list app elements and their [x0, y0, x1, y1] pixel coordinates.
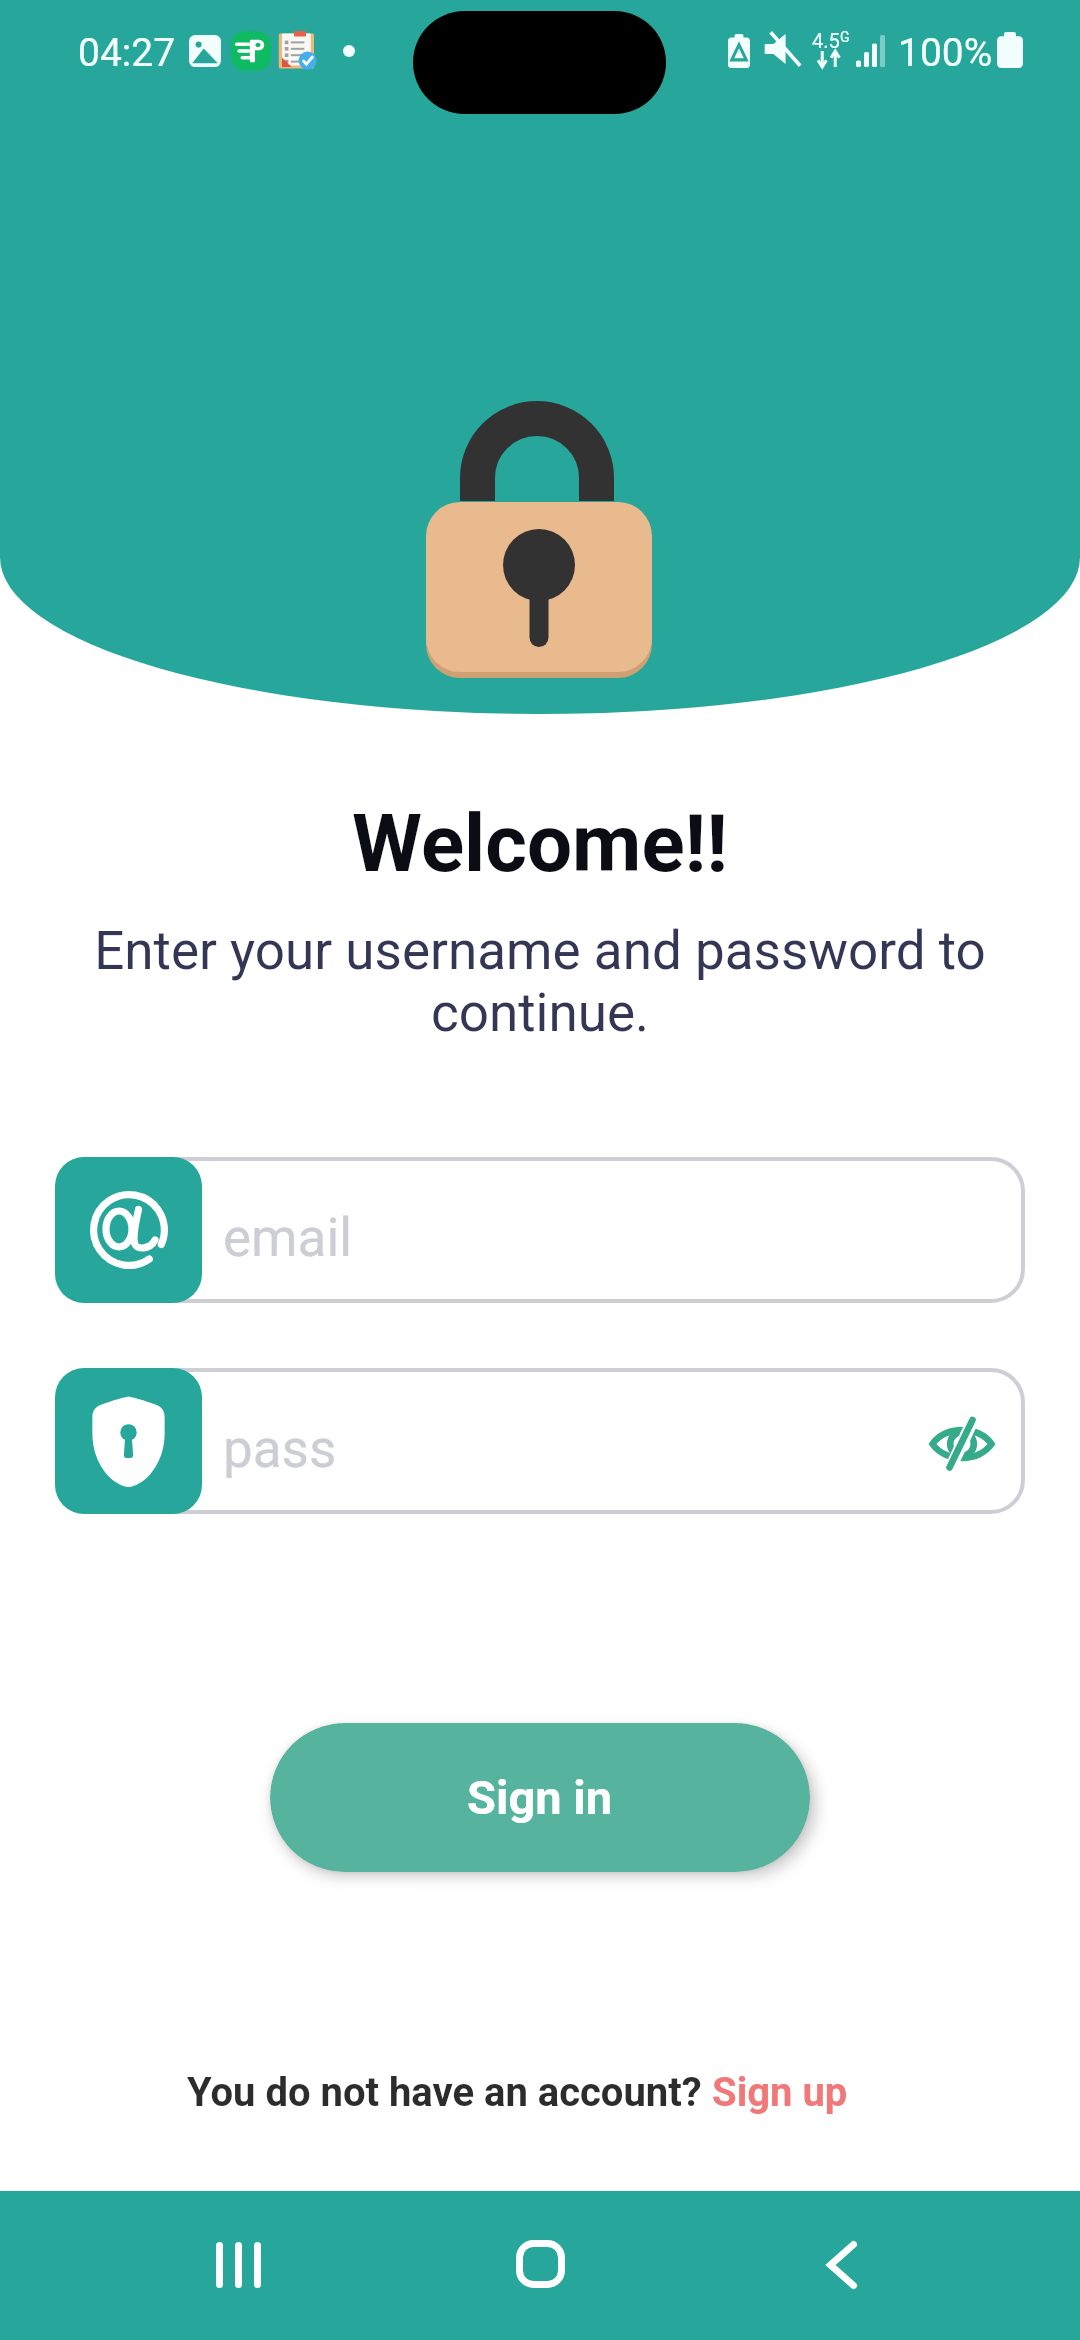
staticText: email: [223, 1207, 353, 1269]
staticText: pass: [223, 1418, 337, 1480]
button[interactable]: Sign in: [270, 1723, 810, 1872]
button[interactable]: Home: [490, 2214, 590, 2314]
staticText: You do not have an account?: [187, 2069, 712, 2116]
button[interactable]: Toggle password visibility: [902, 1394, 1022, 1494]
staticText: 4.5: [812, 29, 840, 52]
staticText: Sign up: [712, 2069, 848, 2116]
staticText: Welcome!!: [0, 797, 1080, 891]
button[interactable]: Back: [792, 2215, 892, 2315]
staticText: G: [840, 29, 850, 45]
staticText: 04:27: [78, 30, 176, 76]
button[interactable]: email: [0, 1157, 1080, 1303]
button[interactable]: pass: [0, 1368, 1080, 1514]
staticText: Sign in: [467, 1770, 613, 1825]
staticText: 100%: [898, 30, 993, 76]
button[interactable]: Recent apps: [188, 2215, 288, 2315]
button[interactable]: Sign up: [712, 2069, 848, 2116]
staticText: Enter your username and password to cont…: [92, 920, 988, 1044]
